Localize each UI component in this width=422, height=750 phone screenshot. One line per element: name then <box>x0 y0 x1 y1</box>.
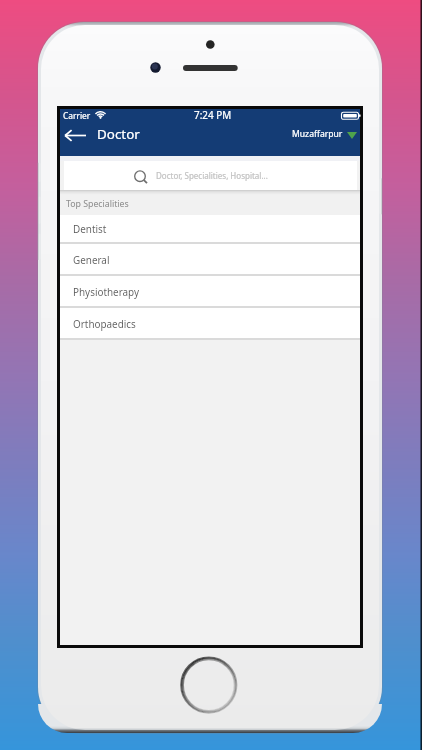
staticText: Muzaffarpur <box>292 128 343 140</box>
staticText: Carrier <box>63 110 91 121</box>
staticText: Doctor <box>97 125 140 143</box>
staticText: General <box>73 253 110 266</box>
staticText: 7:24 PM <box>194 108 232 121</box>
staticText: Dentist <box>73 222 107 235</box>
button[interactable]: Physiotherapy <box>60 276 360 306</box>
staticText: Orthopaedics <box>73 317 136 330</box>
button[interactable]: Dentist <box>60 215 360 242</box>
staticText: Top Specialities <box>66 198 129 210</box>
button[interactable]: Doctor, Specialities, Hospital... <box>64 161 357 190</box>
button[interactable]: Back <box>61 123 89 148</box>
button[interactable]: General <box>60 244 360 274</box>
button[interactable]: Muzaffarpur <box>290 125 359 143</box>
staticText: Physiotherapy <box>73 285 140 298</box>
button[interactable]: Orthopaedics <box>60 308 360 338</box>
staticText: Doctor, Specialities, Hospital... <box>156 170 268 181</box>
